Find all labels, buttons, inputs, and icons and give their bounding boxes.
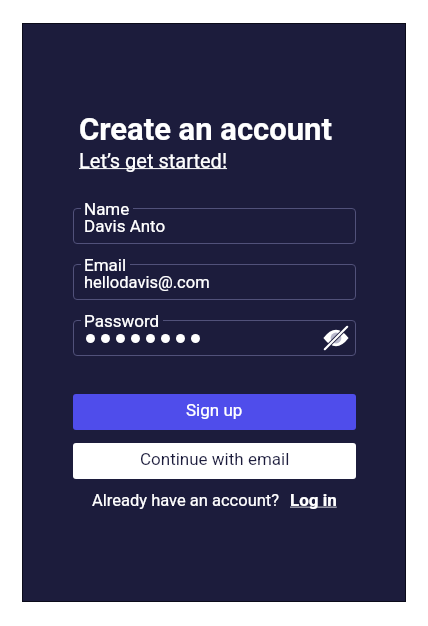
button[interactable]: Hide password <box>321 323 351 353</box>
button[interactable]: Sign up <box>73 394 356 430</box>
staticText: Already have an account? <box>92 491 280 510</box>
staticText: Davis Anto <box>84 216 166 236</box>
staticText: Continue with email <box>140 449 290 469</box>
button[interactable]: Continue with email <box>73 443 356 479</box>
staticText: Create an account <box>79 111 332 147</box>
staticText: Sign up <box>186 400 243 420</box>
button[interactable]: Log in <box>290 490 337 510</box>
staticText: Name <box>84 199 130 219</box>
staticText: Password <box>84 311 160 331</box>
button[interactable]: Let’s get started! <box>79 149 228 172</box>
staticText: Email <box>84 255 127 275</box>
staticText: hellodavis@.com <box>84 273 210 292</box>
